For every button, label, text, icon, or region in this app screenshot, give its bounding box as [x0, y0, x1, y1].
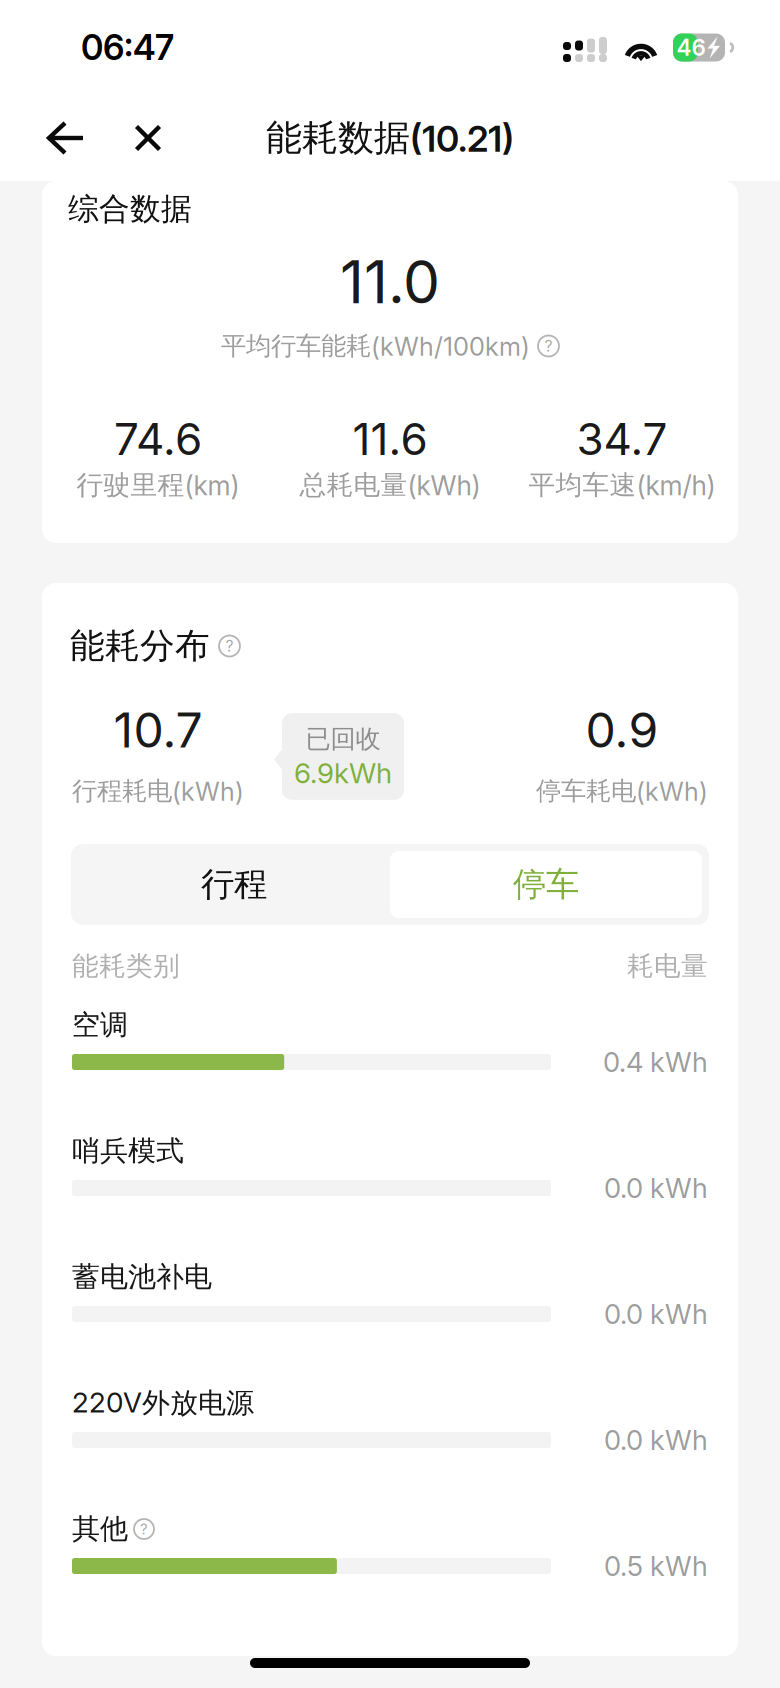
button[interactable]: 说明	[219, 635, 240, 656]
staticText: 空调	[72, 1007, 128, 1043]
staticText: 耗电量	[627, 949, 708, 983]
staticText: 已回收	[305, 723, 380, 755]
button[interactable]: 关闭	[122, 98, 174, 178]
staticText: 34.7	[576, 412, 667, 466]
staticText: ?	[225, 636, 233, 655]
staticText: 0.5 kWh	[604, 1549, 708, 1583]
staticText: 蓄电池补电	[72, 1259, 212, 1295]
staticText: 0.0 kWh	[604, 1423, 708, 1457]
staticText: 06:47	[81, 26, 174, 68]
staticText: 11.0	[340, 246, 440, 317]
staticText: 能耗类别	[72, 949, 180, 983]
staticText: 0.0 kWh	[604, 1171, 708, 1205]
staticText: 行程耗电(kWh)	[72, 775, 244, 807]
staticText: 6.9kWh	[294, 756, 392, 790]
staticText: 停车	[513, 863, 579, 905]
staticText: 哨兵模式	[72, 1133, 184, 1169]
staticText: 10.7	[113, 701, 202, 759]
staticText: 74.6	[114, 412, 202, 466]
staticText: ?	[544, 336, 552, 355]
staticText: 11.6	[352, 412, 427, 466]
staticText: 平均车速(km/h)	[528, 468, 715, 502]
button[interactable]: 行程	[78, 851, 390, 918]
button[interactable]: 返回	[35, 98, 97, 178]
staticText: 行程	[201, 863, 267, 905]
button[interactable]: 停车	[390, 851, 702, 918]
staticText: 总耗电量(kWh)	[299, 468, 480, 502]
button[interactable]: 说明	[134, 1519, 154, 1539]
staticText: 其他	[72, 1511, 128, 1547]
staticText: 综合数据	[68, 190, 192, 228]
staticText: 46	[676, 34, 705, 61]
staticText: 停车耗电(kWh)	[536, 775, 708, 807]
staticText: 220V外放电源	[72, 1385, 254, 1421]
staticText: 平均行车能耗(kWh/100km)	[221, 330, 530, 362]
staticText: 0.9	[585, 701, 658, 759]
staticText: 能耗数据(10.21)	[266, 115, 514, 161]
staticText: 0.0 kWh	[604, 1297, 708, 1331]
staticText: 0.4 kWh	[603, 1045, 708, 1079]
staticText: 行驶里程(km)	[76, 468, 239, 502]
button[interactable]: 说明	[538, 335, 559, 356]
staticText: 能耗分布	[70, 624, 210, 668]
staticText: ?	[140, 1520, 148, 1538]
